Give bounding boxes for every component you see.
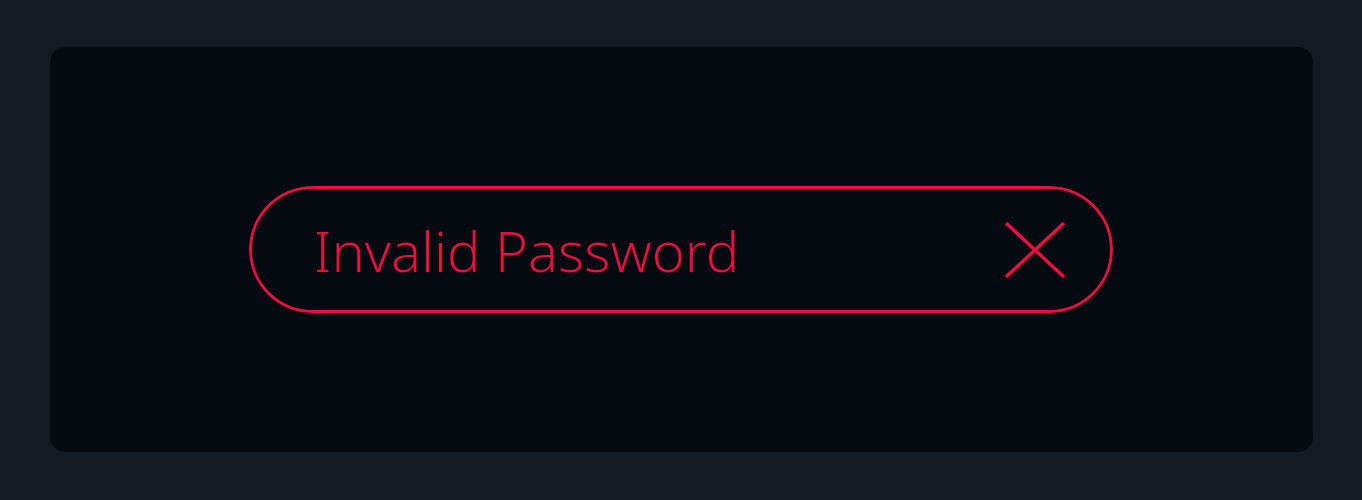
staticText: Invalid Password bbox=[314, 212, 740, 288]
button[interactable]: Dismiss bbox=[999, 214, 1071, 286]
button[interactable]: Invalid Password bbox=[249, 186, 1113, 313]
